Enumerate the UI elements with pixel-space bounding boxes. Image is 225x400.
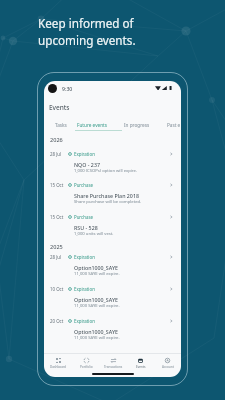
staticText: Future events — [77, 122, 108, 128]
staticText: Option1000_SAYE — [74, 296, 118, 303]
staticText: RSU - 528 — [74, 224, 98, 231]
staticText: 1,000 (CSOPs) option will expire. — [74, 168, 137, 174]
staticText: Expiration — [74, 318, 95, 324]
staticText: 10 Oct — [50, 286, 64, 292]
button[interactable]: Past e — [167, 122, 181, 128]
staticText: 2026 — [50, 136, 63, 144]
staticText: 1,000 units will vest. — [74, 231, 114, 237]
staticText: 11,000 SAYE will expire. — [74, 271, 120, 277]
staticText: 20 Oct — [50, 318, 64, 324]
button[interactable]: Account — [154, 354, 181, 371]
staticText: Tasks — [55, 122, 67, 128]
staticText: Purchase — [74, 214, 93, 220]
button[interactable]: 15 Oct — [44, 182, 181, 213]
other: Open RSU - 528 — [169, 215, 173, 219]
staticText: Expiration — [74, 254, 95, 260]
staticText: Account — [162, 365, 174, 369]
staticText: Portfolio — [80, 365, 93, 369]
button[interactable]: Events — [127, 354, 154, 371]
staticText: Option1000_SAYE — [74, 328, 118, 335]
staticText: NQO - 237 — [74, 161, 100, 168]
staticText: 9:30 — [62, 85, 73, 92]
button[interactable]: 28 Jul — [44, 151, 181, 182]
button[interactable]: Tasks — [55, 122, 67, 128]
staticText: 28 Jul — [50, 254, 62, 260]
staticText: Keep informed of upcoming events. — [38, 15, 136, 49]
staticText: Share purchase will be completed. — [74, 199, 142, 205]
button[interactable]: Transactions — [100, 354, 127, 371]
staticText: Transactions — [104, 365, 123, 369]
staticText: Share Purchase Plan 2018 — [74, 192, 139, 199]
button[interactable]: 10 Oct — [44, 286, 181, 317]
staticText: 15 Oct — [50, 182, 64, 188]
staticText: Events — [136, 365, 146, 369]
button[interactable]: 28 Jul — [44, 254, 181, 285]
button[interactable]: Portfolio — [72, 354, 100, 371]
staticText: 11,000 SAYE will expire. — [74, 303, 120, 309]
staticText: Expiration — [74, 151, 95, 157]
staticText: Option1000_SAYE — [74, 264, 118, 271]
other: Open Option1000_SAYE — [169, 287, 173, 291]
staticText: 2025 — [50, 243, 63, 251]
button[interactable]: Dashboard — [44, 354, 72, 371]
staticText: Expiration — [74, 286, 95, 292]
staticText: 28 Jul — [50, 151, 62, 157]
staticText: Events — [49, 103, 70, 112]
other: Open Share Purchase Plan 2018 — [169, 183, 173, 187]
button[interactable]: 20 Oct — [44, 318, 181, 349]
other: Open Option1000_SAYE — [169, 319, 173, 323]
staticText: 15 Oct — [50, 214, 64, 220]
staticText: Past e — [167, 122, 181, 128]
button[interactable]: Future events — [77, 122, 108, 128]
staticText: Dashboard — [50, 365, 67, 369]
button[interactable]: 15 Oct — [44, 214, 181, 245]
staticText: 11,000 SAYE will expire. — [74, 335, 120, 341]
staticText: In progress — [124, 122, 150, 128]
other: Open Option1000_SAYE — [169, 255, 173, 259]
staticText: Purchase — [74, 182, 93, 188]
button[interactable]: In progress — [124, 122, 150, 128]
other: Open NQO - 237 — [169, 152, 173, 156]
